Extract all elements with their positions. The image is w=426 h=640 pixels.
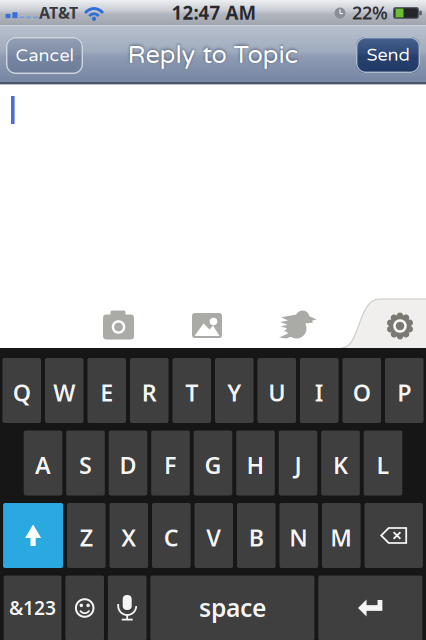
button[interactable]: W xyxy=(45,358,83,423)
button[interactable]: H xyxy=(236,430,275,495)
staticText: I xyxy=(315,377,324,408)
button[interactable]: K xyxy=(321,430,360,495)
button[interactable]: V xyxy=(194,503,233,568)
button[interactable]: M xyxy=(322,503,361,568)
button[interactable]: Return xyxy=(318,575,422,640)
staticText: M xyxy=(330,522,352,553)
button[interactable]: B xyxy=(237,503,276,568)
button[interactable]: F xyxy=(151,430,190,495)
staticText: G xyxy=(204,449,221,481)
staticText: N xyxy=(289,522,308,553)
button[interactable]: N xyxy=(279,503,318,568)
button[interactable]: X xyxy=(109,503,148,568)
button[interactable]: L xyxy=(364,430,402,495)
button[interactable]: Share to Twitter xyxy=(275,303,319,347)
staticText: U xyxy=(268,377,285,408)
staticText: E xyxy=(100,377,113,408)
staticText: 22% xyxy=(352,0,388,25)
button[interactable]: U xyxy=(257,358,296,423)
staticText: 12:47 AM xyxy=(171,0,256,25)
button[interactable]: S xyxy=(66,430,105,495)
button[interactable]: G xyxy=(194,430,232,495)
staticText: X xyxy=(121,522,136,553)
staticText: J xyxy=(294,449,301,481)
button[interactable]: &123 xyxy=(4,575,61,640)
button[interactable]: I xyxy=(300,358,338,423)
staticText: D xyxy=(119,449,136,481)
staticText: T xyxy=(185,377,198,408)
button[interactable]: Send xyxy=(356,37,420,73)
staticText: S xyxy=(79,449,92,481)
button[interactable]: Shift xyxy=(3,503,63,568)
staticText: V xyxy=(206,522,221,553)
button[interactable]: Settings xyxy=(378,304,422,348)
button[interactable]: E xyxy=(87,358,126,423)
button[interactable]: D xyxy=(109,430,147,495)
button[interactable]: Cancel xyxy=(6,37,83,74)
button[interactable]: Z xyxy=(67,503,106,568)
button[interactable]: R xyxy=(130,358,168,423)
button[interactable]: Delete xyxy=(364,503,423,568)
button[interactable]: Y xyxy=(215,358,253,423)
button[interactable]: O xyxy=(342,358,381,423)
button[interactable]: Dictate xyxy=(108,575,146,640)
staticText: AT&T xyxy=(39,2,78,23)
button[interactable]: Attach Photo from Library xyxy=(185,303,229,347)
staticText: &123 xyxy=(9,594,56,621)
button[interactable]: Emoji xyxy=(65,575,104,640)
button[interactable]: Q xyxy=(2,358,41,423)
button[interactable]: Attach Photo from Camera xyxy=(96,303,140,347)
staticText: Reply to Topic xyxy=(127,40,298,70)
staticText: B xyxy=(249,522,264,553)
staticText: Y xyxy=(227,377,241,408)
staticText: P xyxy=(397,377,411,408)
staticText: R xyxy=(142,377,157,408)
staticText: H xyxy=(246,449,264,481)
button[interactable]: T xyxy=(172,358,211,423)
staticText: L xyxy=(376,449,389,481)
staticText: space xyxy=(199,591,266,624)
button[interactable]: J xyxy=(279,430,317,495)
staticText: Z xyxy=(80,522,93,553)
button[interactable]: A xyxy=(24,430,62,495)
staticText: A xyxy=(35,449,51,481)
staticText: O xyxy=(353,377,371,408)
staticText: C xyxy=(164,522,179,553)
staticText: W xyxy=(53,377,75,408)
staticText: Send xyxy=(366,44,409,66)
staticText: Cancel xyxy=(15,45,73,66)
staticText: Q xyxy=(13,377,31,408)
staticText: K xyxy=(333,449,348,481)
button[interactable]: P xyxy=(385,358,423,423)
button[interactable]: C xyxy=(152,503,191,568)
button[interactable]: space xyxy=(150,575,314,640)
staticText: F xyxy=(164,449,177,481)
